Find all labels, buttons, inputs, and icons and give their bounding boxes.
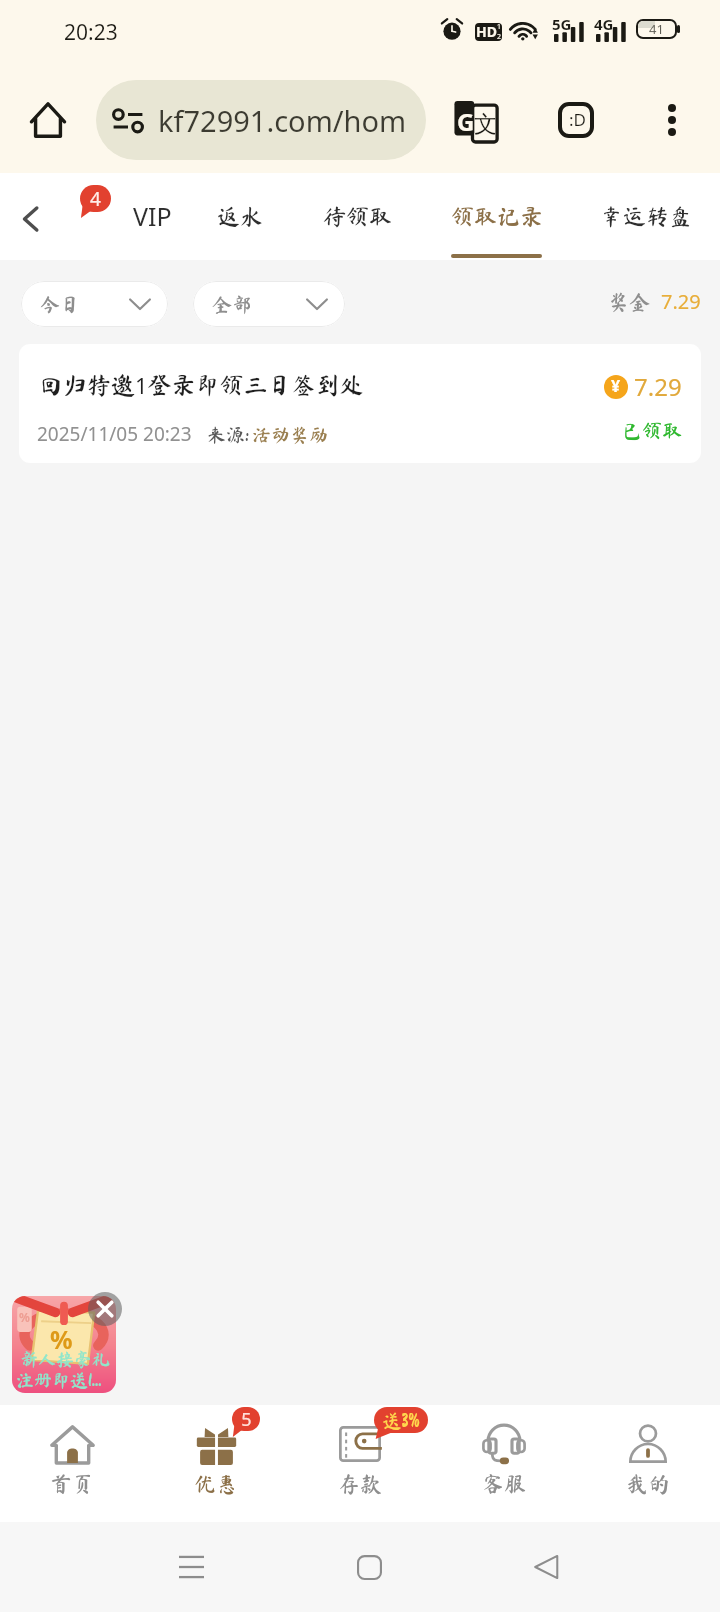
button[interactable]: 优惠 — [144, 1405, 288, 1522]
button[interactable]: Home — [20, 92, 76, 148]
staticText: 20:23 — [64, 18, 118, 47]
staticText: 2025/11/05 20:23 — [37, 421, 192, 447]
staticText: 客服 — [482, 1473, 527, 1495]
staticText: VIP — [133, 199, 172, 233]
staticText: 文 — [474, 110, 497, 139]
staticText: 7.29 — [661, 288, 701, 315]
staticText: 返水 — [217, 205, 263, 228]
button[interactable]: % — [12, 1296, 116, 1393]
staticText: 4G — [594, 14, 614, 34]
button[interactable]: 存款 — [288, 1405, 432, 1522]
staticText: HD — [476, 23, 497, 40]
button[interactable]: Recent apps — [161, 1537, 221, 1597]
button[interactable]: Translate page — [444, 88, 508, 152]
staticText: % — [50, 1322, 73, 1356]
staticText: 我的 — [626, 1473, 671, 1495]
button[interactable]: Switch tabs — [546, 90, 606, 150]
button[interactable]: 首页 — [0, 1405, 144, 1522]
staticText: % — [19, 1309, 30, 1325]
button[interactable]: VIP — [133, 177, 172, 255]
staticText: 注册即送1... — [16, 1371, 102, 1389]
staticText: kf72991.com/hom — [158, 101, 407, 140]
staticText: G — [457, 105, 475, 138]
staticText: 幸运转盘 — [600, 205, 692, 228]
staticText: 全部 — [212, 294, 252, 314]
button[interactable]: 返水 — [217, 177, 263, 255]
button[interactable]: Home — [339, 1537, 399, 1597]
staticText: 5 — [241, 1407, 252, 1431]
staticText: 存款 — [338, 1473, 383, 1495]
button[interactable]: Close promotion — [88, 1292, 122, 1326]
staticText: 5G — [552, 14, 572, 34]
staticText: 领取记录 — [451, 205, 543, 228]
staticText: 7.29 — [634, 370, 682, 403]
button[interactable]: 待领取 — [323, 177, 392, 255]
button[interactable]: Back — [516, 1537, 576, 1597]
button[interactable]: 幸运转盘 — [600, 177, 692, 255]
button[interactable]: Back — [6, 195, 54, 243]
button[interactable]: 全部 — [193, 281, 345, 327]
button[interactable]: 今日 — [21, 281, 168, 327]
staticText: 2 — [497, 32, 502, 40]
button[interactable]: More options — [648, 96, 696, 144]
button[interactable]: 领取记录 — [451, 177, 543, 255]
button[interactable]: 回归特邀1登录即领三日签到处 — [19, 344, 701, 463]
staticText: 奖金 — [608, 292, 650, 313]
staticText: :D — [569, 108, 586, 131]
staticText: 来源: — [207, 425, 250, 444]
staticText: 回归特邀1登录即领三日签到处 — [39, 370, 364, 400]
staticText: 1 — [497, 23, 502, 32]
staticText: 41 — [649, 21, 664, 36]
staticText: 优惠 — [194, 1473, 239, 1495]
staticText: 今日 — [40, 294, 80, 314]
staticText: 已领取 — [622, 420, 682, 440]
staticText: 4 — [90, 186, 101, 212]
staticText: 新人接豪礼 — [20, 1350, 110, 1368]
staticText: 首页 — [50, 1473, 95, 1495]
button[interactable]: kf72991.com/hom — [96, 80, 426, 160]
button[interactable]: 我的 — [576, 1405, 720, 1522]
staticText: ¥ — [611, 375, 621, 397]
staticText: 送3% — [382, 1411, 420, 1430]
staticText: 待领取 — [323, 205, 392, 228]
staticText: 活动奖励 — [252, 425, 329, 444]
button[interactable]: 客服 — [432, 1405, 576, 1522]
